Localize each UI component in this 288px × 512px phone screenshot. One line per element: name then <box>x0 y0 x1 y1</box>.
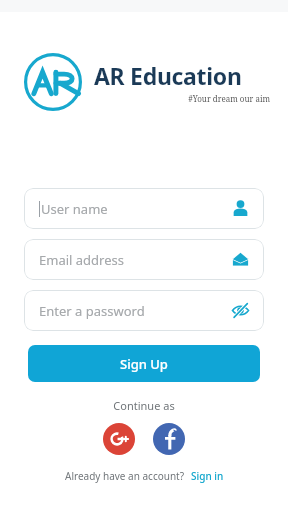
staticText: Continue as <box>0 398 288 413</box>
staticText: Enter a password <box>39 302 231 320</box>
staticText: AR Education <box>94 60 242 91</box>
staticText: #Your dream our aim <box>94 93 270 104</box>
button[interactable]: User name <box>24 188 264 229</box>
staticText: Sign in <box>191 469 224 483</box>
button[interactable]: Enter a password <box>24 290 264 331</box>
staticText: Already have an account? <box>65 469 185 483</box>
staticText: Email address <box>39 251 231 269</box>
other: Show password <box>231 301 250 320</box>
other: Email address <box>231 250 250 269</box>
staticText: User name <box>41 200 231 218</box>
other: User name <box>231 199 250 218</box>
button[interactable]: Sign Up <box>28 345 260 382</box>
button[interactable]: Continue with Google <box>103 423 135 455</box>
staticText: Sign Up <box>120 355 168 373</box>
button[interactable]: Sign in <box>191 469 224 483</box>
button[interactable]: Email address <box>24 239 264 280</box>
button[interactable]: Continue with Facebook <box>153 423 185 455</box>
